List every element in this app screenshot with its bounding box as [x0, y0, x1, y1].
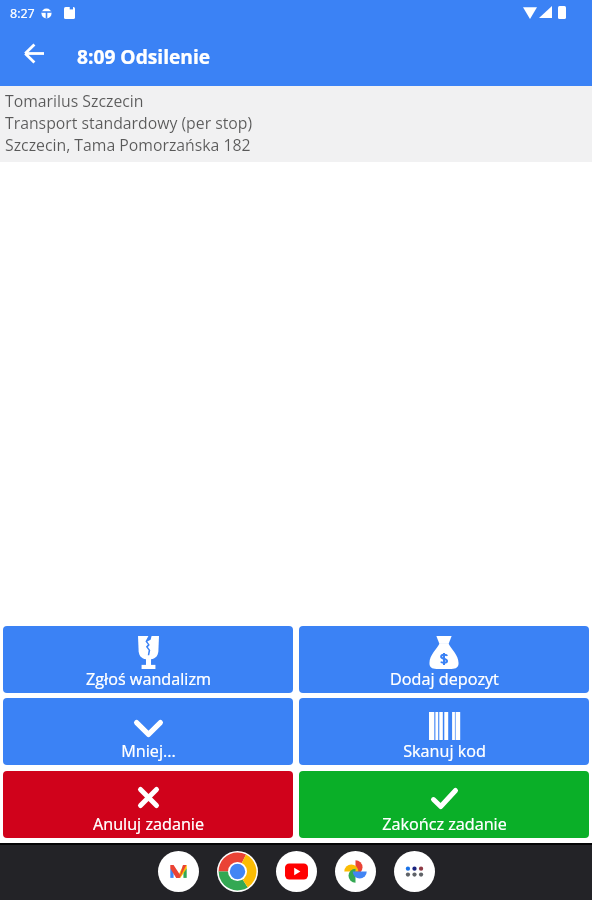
- button[interactable]: Chrome: [217, 851, 258, 892]
- button[interactable]: Zgłoś wandalizm: [3, 626, 293, 693]
- staticText: Zgłoś wandalizm: [86, 668, 211, 690]
- staticText: Szczecin, Tama Pomorzańska 182: [5, 134, 251, 156]
- button[interactable]: All apps: [394, 851, 435, 892]
- staticText: Dodaj depozyt: [390, 668, 499, 690]
- staticText: Anuluj zadanie: [93, 813, 204, 835]
- button[interactable]: Zakończ zadanie: [299, 771, 589, 838]
- staticText: 8:27: [10, 5, 35, 22]
- staticText: Skanuj kod: [403, 740, 486, 762]
- button[interactable]: Gmail: [158, 851, 199, 892]
- staticText: 8:09 Odsilenie: [77, 43, 211, 69]
- staticText: Transport standardowy (per stop): [5, 112, 253, 134]
- button[interactable]: Photos: [335, 851, 376, 892]
- button[interactable]: Dodaj depozyt: [299, 626, 589, 693]
- button[interactable]: Mniej...: [3, 698, 293, 765]
- button[interactable]: YouTube: [276, 851, 317, 892]
- staticText: Mniej...: [121, 740, 176, 762]
- button[interactable]: Skanuj kod: [299, 698, 589, 765]
- staticText: Zakończ zadanie: [382, 813, 507, 835]
- button[interactable]: Back: [12, 31, 56, 75]
- staticText: Tomarilus Szczecin: [5, 90, 144, 112]
- button[interactable]: Anuluj zadanie: [3, 771, 293, 838]
